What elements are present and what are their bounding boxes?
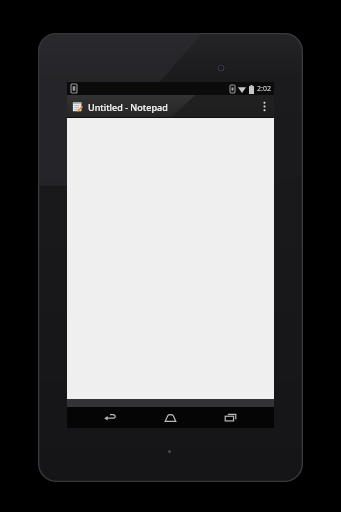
staticText: 2:02 — [257, 84, 271, 94]
button[interactable]: More options — [256, 95, 272, 118]
button[interactable]: Back — [97, 407, 123, 428]
button[interactable]: Recent apps — [217, 407, 243, 428]
button[interactable]: Home — [157, 407, 183, 428]
staticText: Untitled - Notepad — [88, 101, 168, 113]
